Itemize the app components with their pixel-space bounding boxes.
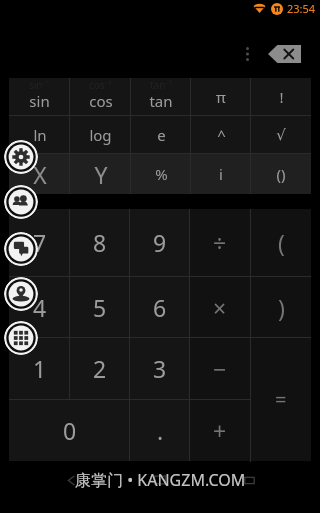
staticText: ÷: [213, 227, 227, 258]
staticText: 23:54: [287, 1, 316, 16]
button[interactable]: 4: [9, 277, 70, 337]
button[interactable]: Settings: [4, 140, 38, 174]
button[interactable]: !: [251, 78, 311, 115]
staticText: X: [33, 159, 47, 190]
button[interactable]: 3: [130, 338, 190, 399]
staticText: √: [276, 126, 286, 143]
staticText: cos: [89, 91, 113, 111]
button[interactable]: Recents: [238, 469, 260, 491]
staticText: 4: [33, 292, 47, 323]
button[interactable]: More options: [238, 42, 256, 66]
staticText: 7: [33, 227, 47, 258]
staticText: tan⁻¹: [150, 78, 173, 92]
button[interactable]: −: [190, 338, 250, 399]
button[interactable]: 7: [9, 209, 70, 276]
staticText: Y: [94, 159, 108, 190]
button[interactable]: ): [251, 277, 311, 337]
staticText: e: [157, 125, 166, 145]
staticText: i: [219, 164, 223, 184]
staticText: 5: [93, 292, 107, 323]
staticText: ): [278, 292, 285, 323]
staticText: ^: [217, 125, 226, 145]
button[interactable]: e: [131, 116, 191, 153]
staticText: +: [213, 415, 227, 446]
staticText: 1: [33, 353, 47, 384]
staticText: 2: [93, 353, 107, 384]
staticText: 6: [153, 292, 167, 323]
button[interactable]: Back: [60, 469, 82, 491]
staticText: 9: [153, 227, 167, 258]
button[interactable]: 8: [70, 209, 130, 276]
button[interactable]: √: [251, 116, 311, 153]
button[interactable]: cos⁻¹: [70, 78, 131, 115]
button[interactable]: 9: [130, 209, 190, 276]
staticText: tan: [149, 91, 173, 111]
button[interactable]: ^: [191, 116, 251, 153]
button[interactable]: ×: [190, 277, 250, 337]
button[interactable]: Location: [4, 277, 38, 311]
staticText: π: [216, 87, 226, 107]
staticText: (: [278, 227, 285, 258]
staticText: ln: [33, 125, 47, 145]
staticText: sin: [29, 91, 50, 111]
button[interactable]: sin⁻¹: [9, 78, 70, 115]
button[interactable]: 1: [9, 338, 70, 399]
button[interactable]: ln: [9, 116, 70, 153]
button[interactable]: π: [191, 78, 251, 115]
button[interactable]: Contacts: [4, 185, 38, 219]
staticText: =: [275, 386, 287, 413]
button[interactable]: (): [251, 154, 311, 194]
staticText: (): [276, 164, 286, 184]
button[interactable]: X: [9, 154, 70, 194]
button[interactable]: i: [191, 154, 251, 194]
button[interactable]: Delete: [268, 45, 301, 63]
staticText: log: [89, 125, 112, 145]
button[interactable]: log: [70, 116, 131, 153]
staticText: %: [155, 164, 168, 184]
staticText: 0: [63, 415, 77, 446]
button[interactable]: (: [251, 209, 311, 276]
staticText: 8: [93, 227, 107, 258]
button[interactable]: %: [131, 154, 191, 194]
button[interactable]: Y: [70, 154, 131, 194]
button[interactable]: Messages: [4, 232, 38, 266]
staticText: 3: [153, 353, 167, 384]
staticText: −: [213, 353, 227, 384]
button[interactable]: tan⁻¹: [131, 78, 191, 115]
button[interactable]: Home: [149, 469, 171, 491]
staticText: ×: [213, 292, 227, 323]
staticText: !: [279, 87, 284, 107]
staticText: cos⁻¹: [89, 78, 112, 92]
button[interactable]: 6: [130, 277, 190, 337]
staticText: .: [157, 415, 164, 446]
button[interactable]: +: [190, 400, 250, 461]
button[interactable]: ÷: [190, 209, 250, 276]
button[interactable]: 5: [70, 277, 130, 337]
button[interactable]: All apps: [4, 321, 38, 355]
button[interactable]: .: [130, 400, 190, 461]
button[interactable]: =: [251, 338, 311, 461]
button[interactable]: 0: [9, 400, 130, 461]
staticText: 康掌门 • KANGZM.COM: [75, 469, 246, 491]
button[interactable]: 2: [70, 338, 130, 399]
